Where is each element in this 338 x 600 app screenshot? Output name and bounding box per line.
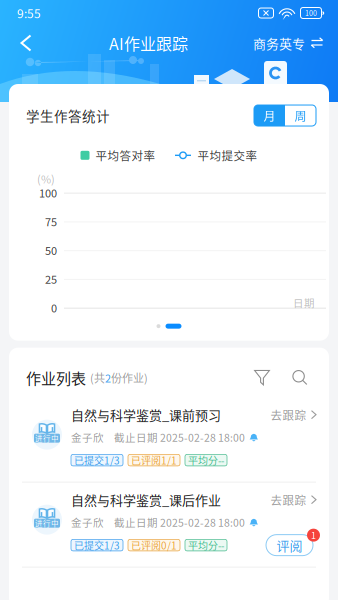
staticText: 周: [294, 107, 306, 124]
staticText: 商务英专: [253, 34, 305, 52]
staticText: 已提交1/3: [74, 453, 120, 467]
staticText: 9:55: [17, 4, 41, 22]
staticText: 去跟踪: [270, 406, 306, 423]
staticText: 已评阅0/1: [131, 538, 177, 552]
staticText: 份作业): [111, 370, 148, 386]
staticText: 金子欣: [71, 429, 104, 445]
staticText: 平均分--: [188, 453, 224, 467]
staticText: 已提交1/3: [74, 538, 120, 552]
staticText: 0: [51, 300, 57, 316]
button[interactable]: 筛选: [247, 363, 277, 393]
staticText: 进行中: [35, 433, 59, 444]
staticText: (共: [90, 370, 105, 386]
staticText: 学生作答统计: [26, 106, 110, 125]
button[interactable]: 周: [285, 105, 316, 126]
staticText: 50: [45, 242, 57, 258]
button[interactable]: 月: [254, 105, 285, 126]
staticText: 100: [305, 8, 317, 18]
staticText: 25: [45, 271, 57, 287]
staticText: 评阅: [276, 536, 302, 554]
staticText: 平均答对率: [95, 147, 155, 164]
staticText: 75: [45, 213, 57, 229]
staticText: 截止日期 2025-02-28 18:00: [114, 429, 245, 445]
staticText: 1: [311, 529, 316, 542]
button[interactable]: 进行中: [9, 398, 329, 482]
staticText: 月: [263, 107, 275, 124]
staticText: 截止日期 2025-02-28 18:00: [114, 514, 245, 530]
staticText: (%): [37, 171, 55, 187]
button[interactable]: 商务英专: [253, 26, 327, 60]
button[interactable]: 返回: [8, 26, 44, 60]
staticText: 2: [105, 370, 111, 386]
staticText: 进行中: [35, 518, 59, 529]
button[interactable]: 评阅: [266, 535, 316, 556]
button[interactable]: 进行中: [9, 483, 329, 567]
button[interactable]: 搜索: [285, 363, 315, 393]
staticText: 平均分--: [188, 538, 224, 552]
staticText: 作业列表: [26, 367, 86, 388]
staticText: 去跟踪: [270, 491, 306, 508]
staticText: 100: [39, 185, 57, 201]
staticText: 已评阅1/1: [131, 453, 177, 467]
staticText: 平均提交率: [197, 147, 257, 164]
staticText: 自然与科学鉴赏_课前预习: [71, 405, 221, 424]
staticText: 金子欣: [71, 514, 104, 530]
staticText: 自然与科学鉴赏_课后作业: [71, 490, 221, 509]
staticText: 日期: [293, 295, 315, 310]
staticText: AI作业跟踪: [109, 31, 188, 55]
